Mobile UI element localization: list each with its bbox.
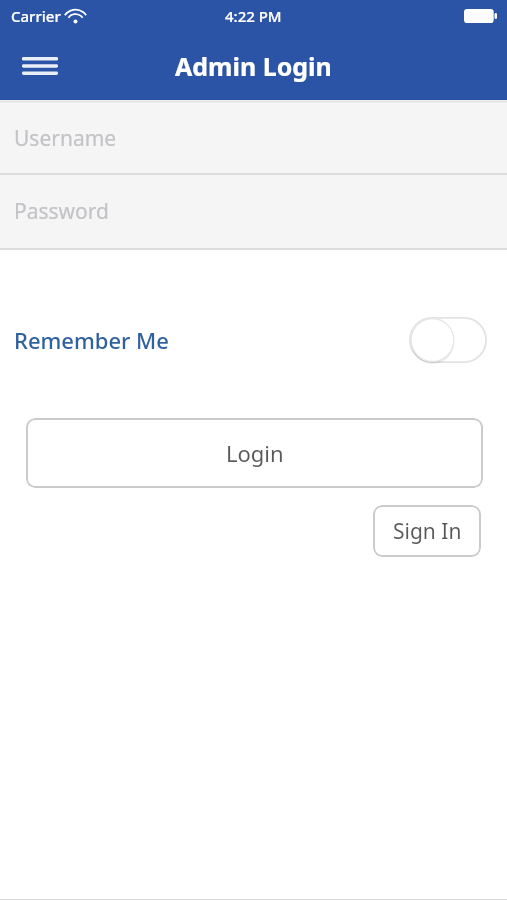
staticText: Username <box>14 124 117 153</box>
staticText: Sign In <box>393 517 462 546</box>
button[interactable]: Password <box>0 175 507 248</box>
staticText: Password <box>14 197 109 226</box>
button[interactable]: Login <box>26 418 483 488</box>
staticText: Carrier <box>11 6 61 26</box>
staticText: Admin Login <box>175 49 332 83</box>
staticText: 4:22 PM <box>225 6 282 26</box>
staticText: Login <box>226 438 284 468</box>
button[interactable]: Remember Me toggle, off <box>409 317 487 363</box>
button[interactable]: Sign In <box>373 505 481 557</box>
staticText: Remember Me <box>14 325 169 355</box>
button[interactable]: Remember Me <box>0 311 507 369</box>
button[interactable]: Username <box>0 103 507 173</box>
button[interactable]: Open navigation menu <box>16 42 64 90</box>
